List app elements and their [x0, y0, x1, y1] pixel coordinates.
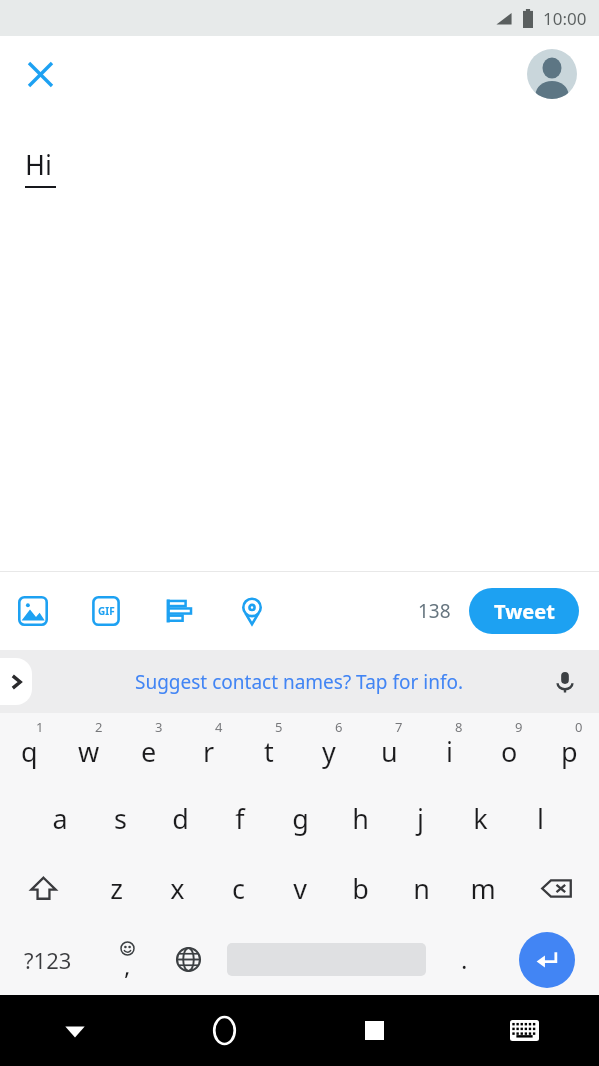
staticText: c	[232, 870, 245, 907]
staticText: b	[352, 870, 369, 907]
staticText: 138	[418, 598, 451, 624]
staticText: h	[352, 800, 369, 837]
staticText: m	[470, 870, 496, 907]
staticText: n	[413, 870, 430, 907]
staticText: 2	[95, 718, 103, 736]
button[interactable]: a	[29, 783, 90, 853]
staticText: 10:00	[543, 7, 587, 30]
button[interactable]: Recent apps	[299, 995, 449, 1066]
button[interactable]: h	[330, 783, 390, 853]
staticText: r	[203, 733, 215, 770]
staticText: Suggest contact names? Tap for info.	[135, 669, 464, 695]
staticText: p	[561, 733, 578, 770]
button[interactable]: 2	[59, 713, 119, 783]
staticText: e	[141, 733, 157, 770]
button[interactable]: 3	[119, 713, 179, 783]
staticText: 4	[215, 718, 223, 736]
staticText: 5	[275, 718, 283, 736]
button[interactable]: x	[147, 853, 208, 924]
button[interactable]: Add poll	[156, 588, 202, 634]
staticText: i	[446, 733, 453, 770]
button[interactable]: b	[330, 853, 391, 924]
button[interactable]: 7	[359, 713, 419, 783]
button[interactable]: d	[150, 783, 210, 853]
staticText: ?123	[24, 945, 72, 975]
button[interactable]: Emoji	[96, 924, 158, 995]
staticText: Hi	[25, 146, 52, 183]
button[interactable]: k	[450, 783, 510, 853]
button[interactable]: 4	[179, 713, 239, 783]
staticText: o	[501, 733, 518, 770]
staticText: 3	[155, 718, 163, 736]
staticText: t	[264, 733, 274, 770]
staticText: j	[417, 800, 424, 837]
button[interactable]: 8	[419, 713, 479, 783]
staticText: q	[21, 733, 38, 770]
button[interactable]: Tweet	[469, 588, 579, 634]
button[interactable]: c	[208, 853, 269, 924]
staticText: s	[114, 800, 127, 837]
button[interactable]: Expand suggestions	[0, 658, 32, 705]
staticText: 7	[395, 718, 403, 736]
button[interactable]: Enter	[519, 932, 575, 988]
staticText: 6	[335, 718, 343, 736]
staticText: .	[461, 943, 468, 976]
button[interactable]: z	[86, 853, 147, 924]
button[interactable]: 6	[299, 713, 359, 783]
button[interactable]: 1	[0, 713, 59, 783]
staticText: w	[78, 733, 100, 770]
button[interactable]: ?123	[0, 924, 96, 995]
button[interactable]: Back	[0, 995, 149, 1066]
staticText: v	[293, 870, 307, 907]
staticText: l	[537, 800, 544, 837]
button[interactable]: Add photo	[10, 588, 56, 634]
staticText: g	[292, 800, 309, 837]
button[interactable]: Close	[14, 48, 66, 100]
staticText: d	[172, 800, 189, 837]
staticText: z	[110, 870, 123, 907]
staticText: 9	[515, 718, 523, 736]
button[interactable]: Shift	[0, 853, 86, 924]
button[interactable]: g	[270, 783, 330, 853]
button[interactable]: n	[391, 853, 452, 924]
button[interactable]: 0	[539, 713, 599, 783]
staticText: a	[52, 800, 68, 837]
button[interactable]: 9	[479, 713, 539, 783]
button[interactable]: .	[434, 924, 495, 995]
button[interactable]: Voice input	[543, 660, 587, 704]
button[interactable]: Profile	[527, 49, 577, 99]
button[interactable]: Add location	[229, 588, 275, 634]
button[interactable]: j	[390, 783, 450, 853]
staticText: x	[170, 870, 185, 907]
button[interactable]: f	[210, 783, 270, 853]
button[interactable]: 5	[239, 713, 299, 783]
staticText: GIF	[98, 604, 115, 618]
button[interactable]: v	[269, 853, 330, 924]
staticText: k	[473, 800, 488, 837]
button[interactable]: Add GIF	[83, 588, 129, 634]
button[interactable]: s	[90, 783, 150, 853]
button[interactable]: l	[510, 783, 570, 853]
button[interactable]: Keyboard	[449, 995, 599, 1066]
staticText: 8	[455, 718, 463, 736]
staticText: ,	[124, 949, 131, 982]
button[interactable]: Suggest contact names? Tap for info.	[135, 669, 464, 695]
staticText: f	[235, 800, 245, 837]
staticText: 1	[36, 718, 44, 736]
staticText: u	[381, 733, 398, 770]
button[interactable]: Backspace	[513, 853, 599, 924]
button[interactable]: Home	[149, 995, 299, 1066]
button[interactable]: m	[452, 853, 513, 924]
staticText: 0	[575, 718, 583, 736]
staticText: Tweet	[494, 598, 555, 625]
button[interactable]: Change language	[158, 924, 219, 995]
staticText: y	[322, 733, 336, 770]
